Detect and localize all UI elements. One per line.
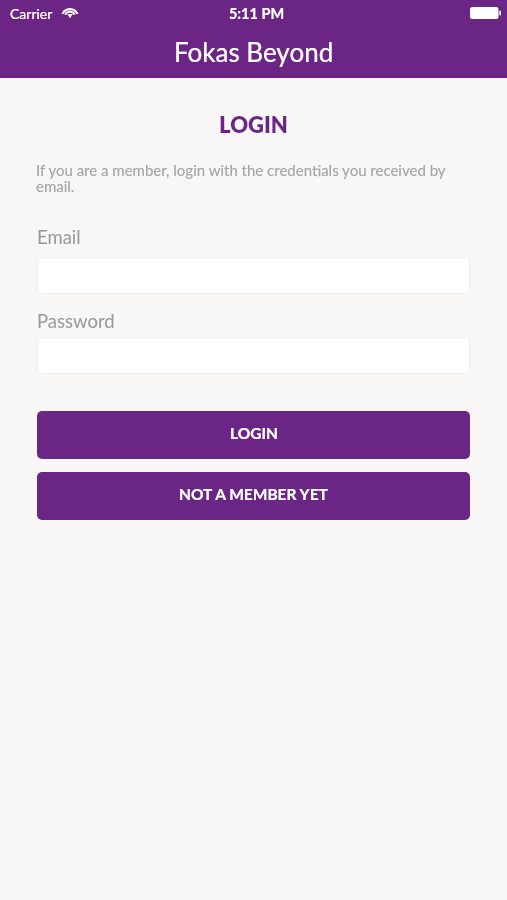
staticText: LOGIN: [230, 424, 278, 443]
button[interactable]: [37, 257, 470, 294]
staticText: 5:11 PM: [3, 5, 507, 22]
button[interactable]: [37, 337, 470, 374]
button[interactable]: NOT A MEMBER YET: [37, 472, 470, 520]
other: Battery full: [470, 7, 501, 19]
staticText: Fokas Beyond: [174, 36, 334, 67]
staticText: If you are a member, login with the cred…: [36, 161, 467, 195]
button[interactable]: LOGIN: [37, 411, 470, 459]
staticText: Password: [37, 310, 115, 332]
staticText: Carrier: [10, 5, 53, 22]
staticText: LOGIN: [0, 111, 507, 137]
other: Wi-Fi signal: [62, 5, 78, 19]
staticText: NOT A MEMBER YET: [179, 485, 328, 504]
staticText: Email: [37, 226, 81, 248]
